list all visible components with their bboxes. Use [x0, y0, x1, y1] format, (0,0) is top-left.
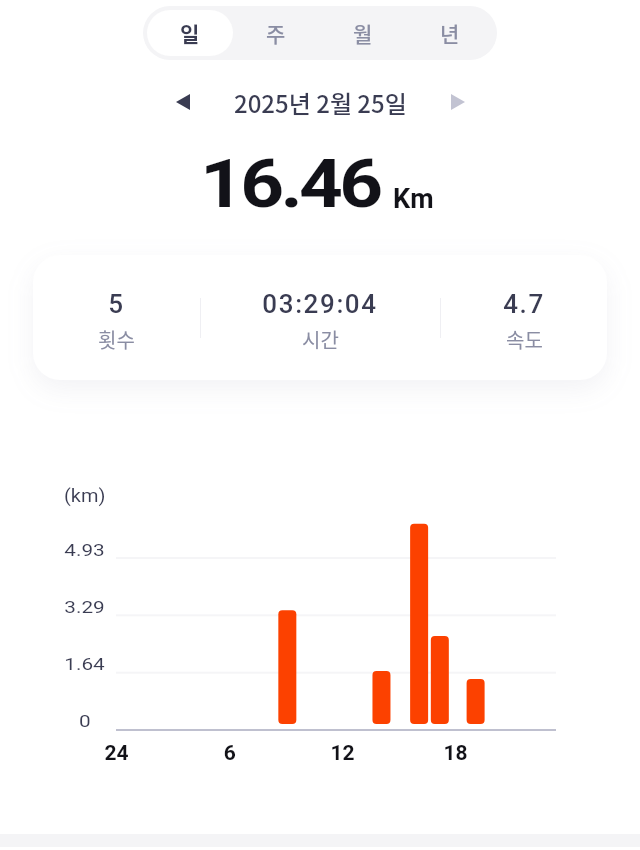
staticText: 6	[224, 741, 236, 764]
staticText: 1.64	[64, 654, 106, 674]
staticText: 횟수	[98, 325, 135, 354]
button[interactable]: 03:29:04	[225, 289, 415, 354]
staticText: 5	[108, 289, 125, 319]
staticText: 2025년 2월 25일	[234, 85, 407, 120]
staticText: 일	[180, 18, 200, 48]
button[interactable]: 5	[21, 289, 211, 354]
button[interactable]: Previous day	[161, 80, 205, 124]
staticText: 4.7	[503, 289, 545, 319]
staticText: Km	[393, 183, 434, 215]
staticText: 12	[330, 741, 355, 764]
staticText: 시간	[302, 325, 339, 354]
staticText: 속도	[506, 325, 543, 354]
staticText: 0	[79, 711, 91, 731]
button[interactable]: 일	[147, 10, 233, 56]
button[interactable]: 주	[233, 10, 319, 56]
staticText: 주	[266, 18, 286, 48]
staticText: 3.29	[64, 597, 106, 617]
staticText: (km)	[64, 484, 106, 506]
staticText: 24	[104, 741, 128, 764]
button[interactable]: 월	[319, 10, 406, 56]
staticText: 4.93	[64, 540, 106, 560]
staticText: 16.46	[200, 146, 380, 223]
button[interactable]: Next day	[436, 80, 480, 124]
staticText: 18	[443, 741, 468, 764]
button[interactable]: 4.7	[429, 289, 619, 354]
staticText: 월	[353, 18, 373, 48]
button[interactable]: 년	[406, 10, 493, 56]
staticText: 03:29:04	[262, 289, 378, 319]
staticText: 년	[440, 18, 460, 48]
